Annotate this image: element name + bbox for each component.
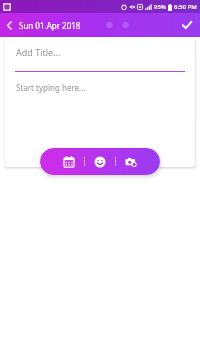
button[interactable]: Set reminder date (54, 148, 84, 175)
button[interactable]: Save note (178, 16, 196, 34)
staticText: 95% (154, 3, 166, 11)
staticText: Start typing here... (16, 82, 86, 93)
button[interactable]: Insert emoji (85, 148, 115, 175)
button[interactable]: Back (0, 16, 18, 34)
staticText: Add Title... (16, 46, 61, 58)
button[interactable]: Attach photo (116, 148, 146, 175)
staticText: Sun 01.Apr 2018 (19, 20, 81, 31)
staticText: 6:50 PM (174, 3, 197, 11)
